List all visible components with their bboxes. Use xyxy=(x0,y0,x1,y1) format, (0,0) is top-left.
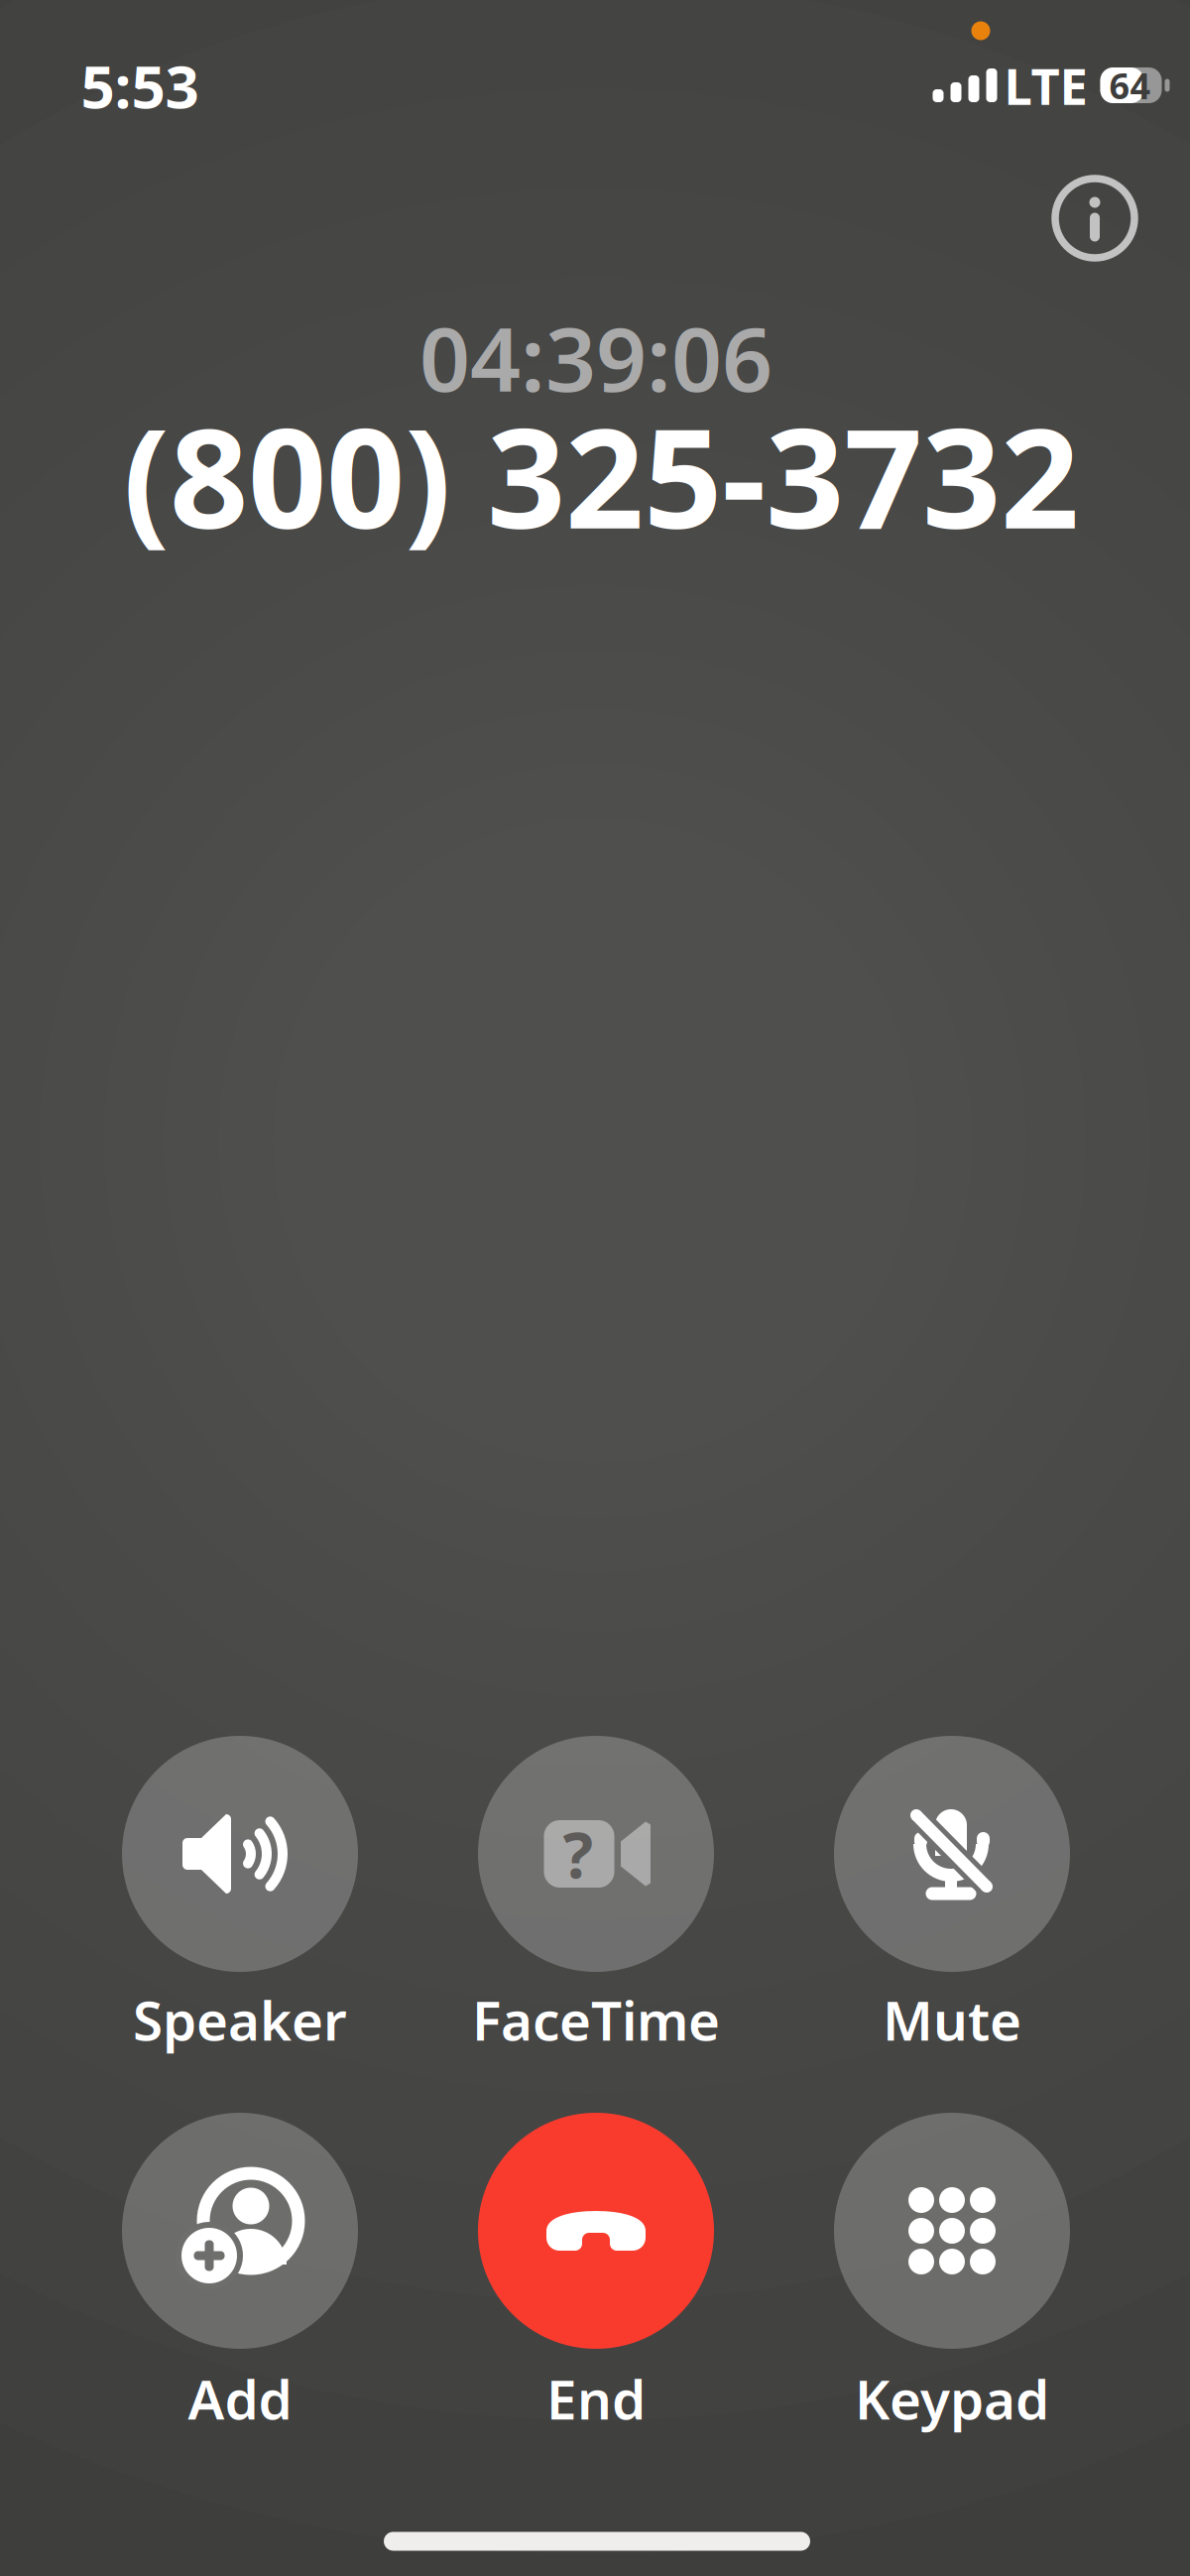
staticText: Speaker xyxy=(133,1984,347,2056)
staticText: 04:39:06 xyxy=(419,298,773,416)
button[interactable]: Mute xyxy=(788,1736,1116,2055)
staticText: End xyxy=(546,2362,646,2434)
button[interactable]: Speaker xyxy=(76,1736,404,2055)
button[interactable]: End xyxy=(432,2113,760,2434)
staticText: Mute xyxy=(883,1984,1021,2056)
staticText: ? xyxy=(563,1812,594,1896)
staticText: Keypad xyxy=(855,2362,1049,2434)
staticText: FaceTime xyxy=(472,1984,720,2056)
staticText: LTE xyxy=(1004,52,1087,119)
staticText: (800) 325-3732 xyxy=(123,384,1079,566)
button[interactable]: ? xyxy=(432,1736,760,2055)
staticText: 64 xyxy=(1109,62,1151,109)
staticText: Add xyxy=(188,2362,292,2434)
button[interactable]: Keypad xyxy=(788,2113,1116,2434)
button[interactable]: Call info xyxy=(1040,164,1149,273)
button[interactable]: Add xyxy=(76,2113,404,2434)
staticText: 5:53 xyxy=(81,46,199,125)
